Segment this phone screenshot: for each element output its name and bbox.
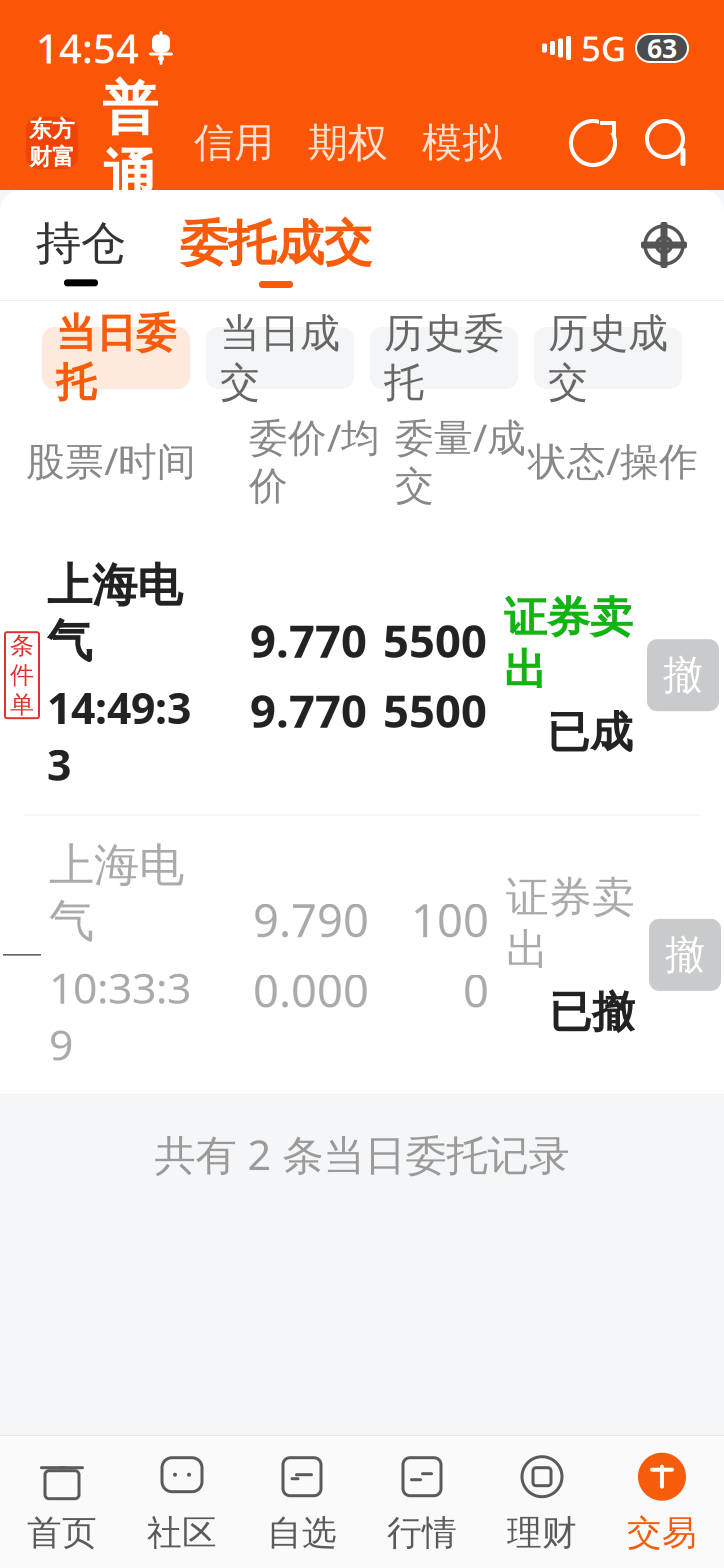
staticText: 状态/操作 <box>528 435 698 486</box>
staticText: 件 <box>10 660 34 690</box>
staticText: 社区 <box>147 1512 217 1554</box>
button[interactable]: 设置 <box>634 215 694 275</box>
staticText: 行情 <box>387 1512 457 1554</box>
staticText: 历史委托 <box>384 309 504 407</box>
staticText: 股票/时间 <box>26 435 196 486</box>
staticText: 自选 <box>267 1512 337 1554</box>
staticText: 撤 <box>663 651 703 700</box>
button[interactable]: 条 <box>0 536 724 814</box>
staticText: 5500 <box>383 680 487 740</box>
staticText: 东方 <box>29 115 75 143</box>
staticText: 63 <box>647 30 677 66</box>
button[interactable]: 委托成交 <box>174 196 378 294</box>
button[interactable]: 当日成交 <box>206 327 354 389</box>
staticText: 证券卖出 <box>506 871 635 976</box>
staticText: 10:33:39 <box>49 959 191 1072</box>
staticText: 9.770 <box>250 680 367 740</box>
button[interactable]: 持仓 <box>30 198 132 292</box>
staticText: 当日委托 <box>56 309 176 407</box>
staticText: 14:49:33 <box>47 679 191 792</box>
button[interactable]: 历史委托 <box>370 327 518 389</box>
button[interactable]: 信用 <box>186 118 282 167</box>
staticText: 9.790 <box>253 890 369 950</box>
staticText: 历史成交 <box>548 309 668 407</box>
button[interactable]: 撤 <box>647 639 719 711</box>
staticText: 首页 <box>27 1512 97 1554</box>
staticText: 上海电气 <box>49 837 184 949</box>
staticText: 已成 <box>547 706 633 759</box>
button[interactable]: 社区 <box>122 1436 242 1568</box>
button[interactable]: 刷新 <box>564 114 622 172</box>
staticText: 0 <box>463 960 489 1020</box>
staticText: 信用 <box>194 118 274 167</box>
button[interactable]: 普通 <box>92 74 168 212</box>
staticText: 证券卖出 <box>504 592 633 696</box>
staticText: 共有 2 条当日委托记录 <box>154 1127 569 1182</box>
staticText: 委价/均价 <box>249 411 380 510</box>
button[interactable]: 搜索 <box>640 114 698 172</box>
staticText: 模拟 <box>422 118 502 167</box>
staticText: 普通 <box>102 74 158 212</box>
staticText: 9.770 <box>250 610 367 670</box>
staticText: 14:54 <box>36 21 139 74</box>
staticText: 交易 <box>627 1512 697 1554</box>
staticText: 财富 <box>29 143 75 171</box>
staticText: 100 <box>411 890 489 950</box>
staticText: 期权 <box>308 118 388 167</box>
staticText: 当日成交 <box>220 309 340 407</box>
button[interactable]: 交易 <box>602 1436 722 1568</box>
button[interactable]: 模拟 <box>414 118 510 167</box>
staticText: 5G <box>581 25 626 71</box>
button[interactable]: 理财 <box>482 1436 602 1568</box>
button[interactable]: 首页 <box>2 1436 122 1568</box>
button[interactable]: 历史成交 <box>534 327 682 389</box>
staticText: 委量/成交 <box>395 411 526 510</box>
staticText: 持仓 <box>36 216 126 271</box>
button[interactable]: 当日委托 <box>42 327 190 389</box>
staticText: 单 <box>10 690 34 719</box>
button[interactable]: 自选 <box>242 1436 362 1568</box>
staticText: 撤 <box>665 930 705 979</box>
staticText: 0.000 <box>253 960 369 1020</box>
button[interactable]: 行情 <box>362 1436 482 1568</box>
staticText: 条 <box>10 631 34 660</box>
staticText: 5500 <box>383 610 487 670</box>
staticText: 委托成交 <box>180 214 372 273</box>
button[interactable]: 撤 <box>649 919 721 991</box>
button[interactable]: 上海电气 <box>0 815 724 1094</box>
button[interactable]: 期权 <box>300 118 396 167</box>
staticText: 上海电气 <box>47 558 182 669</box>
staticText: 理财 <box>507 1512 577 1554</box>
staticText: 已撤 <box>549 986 635 1038</box>
